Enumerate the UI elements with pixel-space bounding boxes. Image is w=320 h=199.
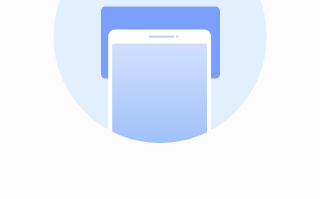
other: Transfer data to your new phone illustra…: [0, 0, 320, 199]
